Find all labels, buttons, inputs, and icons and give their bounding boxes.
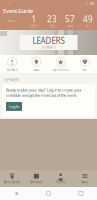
staticText: Event Guide [4, 180, 21, 184]
staticText: 57 [65, 14, 75, 24]
button[interactable]: Log In [6, 102, 22, 111]
staticText: WiFi [82, 68, 87, 71]
staticText: Schedule [30, 180, 43, 184]
button[interactable]: Home [32, 191, 65, 196]
staticText: HRS [49, 24, 54, 28]
button[interactable]: Event Guide [0, 173, 24, 184]
staticText: S U M M I T [41, 46, 55, 49]
button[interactable]: Maps [24, 57, 48, 71]
staticText: DAYS [30, 24, 37, 28]
button[interactable]: Schedule [24, 173, 48, 184]
button[interactable]: WiFi [73, 57, 97, 71]
staticText: 1 [31, 14, 36, 24]
button[interactable]: Experiences [48, 57, 73, 71]
button[interactable]: Recents [65, 191, 97, 196]
staticText: 4G [85, 2, 89, 5]
staticText: Starts in [7, 19, 17, 23]
staticText: Experiences [53, 68, 69, 71]
staticText: 49 [83, 14, 93, 24]
staticText: Speakers [7, 68, 18, 71]
button[interactable]: Speakers [0, 57, 24, 71]
staticText: 11:57 [3, 2, 12, 5]
staticText: More [81, 180, 88, 184]
staticText: Log In [9, 104, 19, 109]
staticText: UP NEXT [4, 77, 19, 82]
staticText: Event Guide [3, 7, 33, 15]
button[interactable]: Back [0, 191, 32, 196]
staticText: SECS [85, 24, 90, 28]
staticText: 23 [47, 14, 57, 24]
button[interactable]: Profile [48, 173, 73, 184]
staticText: Profile [56, 180, 66, 184]
staticText: LEADERS [32, 35, 64, 46]
staticText: MINS [67, 24, 73, 28]
staticText: Maps [33, 68, 39, 71]
staticText: Ready to plan your day? Log in to create… [6, 87, 82, 98]
button[interactable]: More [73, 173, 97, 184]
